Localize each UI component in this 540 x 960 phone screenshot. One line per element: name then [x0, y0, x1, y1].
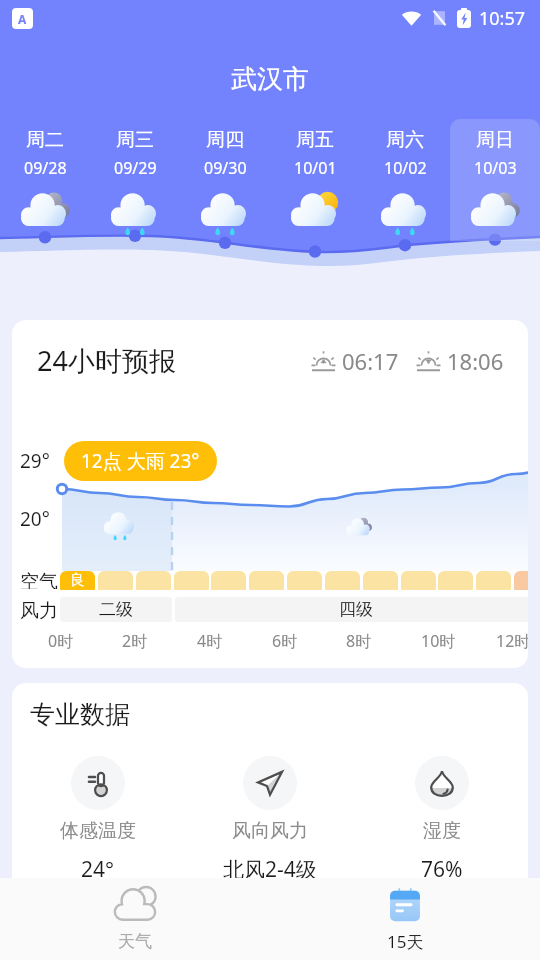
button[interactable]: 周四	[180, 128, 270, 253]
staticText: 良	[70, 571, 85, 590]
button[interactable]: 天气	[0, 878, 270, 960]
staticText: 6时	[272, 630, 298, 652]
staticText: 10/01	[294, 157, 337, 179]
staticText: 专业数据	[30, 699, 130, 730]
staticText: 8时	[346, 630, 372, 652]
staticText: 09/30	[204, 157, 247, 179]
staticText: A	[18, 11, 27, 27]
other: Sunrise	[311, 350, 336, 372]
button[interactable]: 体感温度	[12, 756, 184, 884]
button[interactable]: 周日	[450, 128, 540, 253]
staticText: 二级	[99, 599, 133, 620]
other: Sunset	[416, 350, 441, 372]
staticText: 体感温度	[60, 819, 136, 843]
button[interactable]: 湿度	[356, 756, 528, 884]
button[interactable]: 周六	[360, 128, 450, 253]
staticText: 湿度	[423, 819, 461, 843]
staticText: 风力	[20, 599, 58, 623]
staticText: 天气	[118, 931, 152, 952]
button[interactable]: 风向风力	[184, 756, 356, 884]
staticText: 12点 大雨 23°	[81, 448, 200, 474]
button[interactable]: 12点 大雨 23°	[64, 441, 217, 481]
staticText: 风向风力	[232, 819, 308, 843]
button[interactable]: 周三	[90, 128, 180, 253]
staticText: 12时	[496, 630, 528, 652]
staticText: 15天	[387, 930, 424, 953]
button[interactable]: 周五	[270, 128, 360, 253]
staticText: 24°	[81, 855, 115, 884]
staticText: 周四	[206, 128, 244, 152]
staticText: 10/02	[384, 157, 427, 179]
staticText: 09/28	[24, 157, 67, 179]
staticText: 2时	[122, 630, 148, 652]
staticText: 0时	[48, 630, 74, 652]
staticText: 09/29	[114, 157, 157, 179]
staticText: 周日	[476, 128, 514, 152]
staticText: 24小时预报	[37, 342, 176, 379]
button[interactable]: 15天	[270, 878, 540, 960]
other: 15天	[388, 888, 422, 922]
staticText: 18:06	[447, 346, 504, 376]
staticText: 10:57	[479, 6, 526, 31]
staticText: 76%	[421, 855, 463, 884]
staticText: 4时	[197, 630, 223, 652]
staticText: 空气	[20, 570, 58, 589]
staticText: 周二	[26, 128, 64, 152]
staticText: 四级	[339, 599, 373, 620]
staticText: 06:17	[342, 346, 399, 376]
other: 天气	[114, 888, 156, 921]
button[interactable]: 周二	[0, 128, 90, 253]
staticText: 武汉市	[0, 63, 540, 96]
staticText: 周六	[386, 128, 424, 152]
staticText: 29°	[20, 448, 50, 474]
staticText: 周三	[116, 128, 154, 152]
staticText: 20°	[20, 506, 50, 532]
staticText: 北风2-4级	[223, 855, 317, 884]
staticText: 周五	[296, 128, 334, 152]
staticText: 10/03	[474, 157, 517, 179]
staticText: 10时	[421, 630, 456, 652]
